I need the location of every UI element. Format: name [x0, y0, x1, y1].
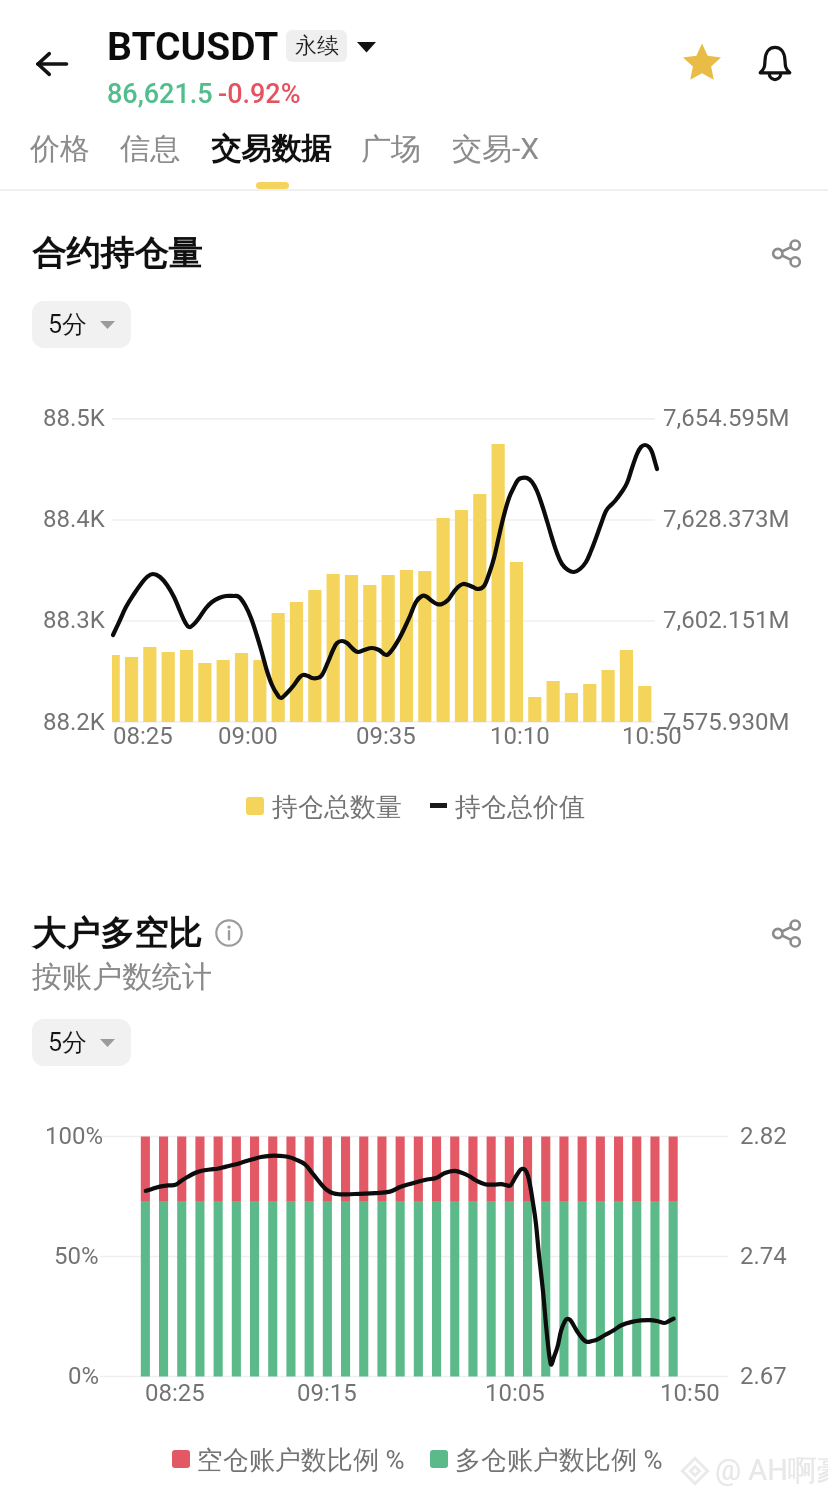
- staticText: 10:50: [622, 722, 682, 750]
- staticText: 88.4K: [43, 505, 105, 533]
- staticText: 合约持仓量: [32, 232, 202, 275]
- staticText: 09:15: [297, 1379, 357, 1407]
- staticText: 价格: [30, 130, 90, 168]
- button[interactable]: 5分: [32, 301, 131, 348]
- button[interactable]: 永续: [286, 30, 347, 62]
- button[interactable]: 广场: [347, 122, 435, 176]
- button[interactable]: 交易-X: [438, 122, 554, 176]
- staticText: 永续: [295, 32, 339, 60]
- button[interactable]: 5分: [32, 1019, 131, 1066]
- button[interactable]: Back: [17, 28, 87, 98]
- staticText: 5分: [48, 1027, 88, 1058]
- staticText: 10:05: [485, 1379, 545, 1407]
- button[interactable]: Switch contract: [342, 22, 390, 70]
- staticText: 7,575.930M: [663, 708, 790, 736]
- staticText: 09:00: [218, 722, 278, 750]
- staticText: 50%: [54, 1242, 99, 1270]
- staticText: 100%: [45, 1122, 104, 1150]
- staticText: 08:25: [113, 722, 173, 750]
- staticText: 持仓总数量: [272, 791, 402, 824]
- staticText: 5分: [48, 309, 88, 340]
- staticText: BTCUSDT: [107, 24, 279, 70]
- staticText: 7,602.151M: [663, 606, 790, 634]
- staticText: 广场: [361, 130, 421, 168]
- staticText: 10:10: [490, 722, 550, 750]
- staticText: 88.3K: [43, 606, 105, 634]
- button[interactable]: Favorite: [671, 31, 733, 93]
- staticText: 2.67: [740, 1362, 787, 1390]
- staticText: 09:35: [356, 722, 416, 750]
- button[interactable]: Share: [755, 222, 817, 284]
- staticText: 空仓账户数比例 %: [197, 1444, 405, 1477]
- staticText: 7,654.595M: [663, 404, 790, 432]
- staticText: 7,628.373M: [663, 505, 790, 533]
- staticText: 2.82: [740, 1122, 787, 1150]
- staticText: 0%: [68, 1362, 100, 1390]
- button[interactable]: 交易数据: [197, 122, 345, 176]
- button[interactable]: 价格: [16, 122, 104, 176]
- button[interactable]: Info: [203, 907, 255, 959]
- staticText: 持仓总价值: [455, 791, 585, 824]
- staticText: 大户多空比: [32, 912, 202, 955]
- staticText: 10:50: [660, 1379, 720, 1407]
- staticText: 交易-X: [452, 130, 540, 168]
- staticText: 信息: [120, 130, 180, 168]
- staticText: @ AH啊豪: [715, 1452, 828, 1489]
- staticText: 08:25: [145, 1379, 205, 1407]
- staticText: 88.5K: [43, 404, 105, 432]
- button[interactable]: 信息: [106, 122, 194, 176]
- staticText: 88.2K: [43, 708, 105, 736]
- staticText: 86,621.5: [107, 78, 213, 110]
- staticText: 多仓账户数比例 %: [455, 1444, 663, 1477]
- button[interactable]: Share: [755, 902, 817, 964]
- staticText: 按账户数统计: [32, 958, 212, 996]
- staticText: -0.92%: [218, 78, 301, 110]
- staticText: 2.74: [740, 1242, 787, 1270]
- staticText: 交易数据: [211, 130, 331, 168]
- button[interactable]: Notifications: [743, 31, 807, 95]
